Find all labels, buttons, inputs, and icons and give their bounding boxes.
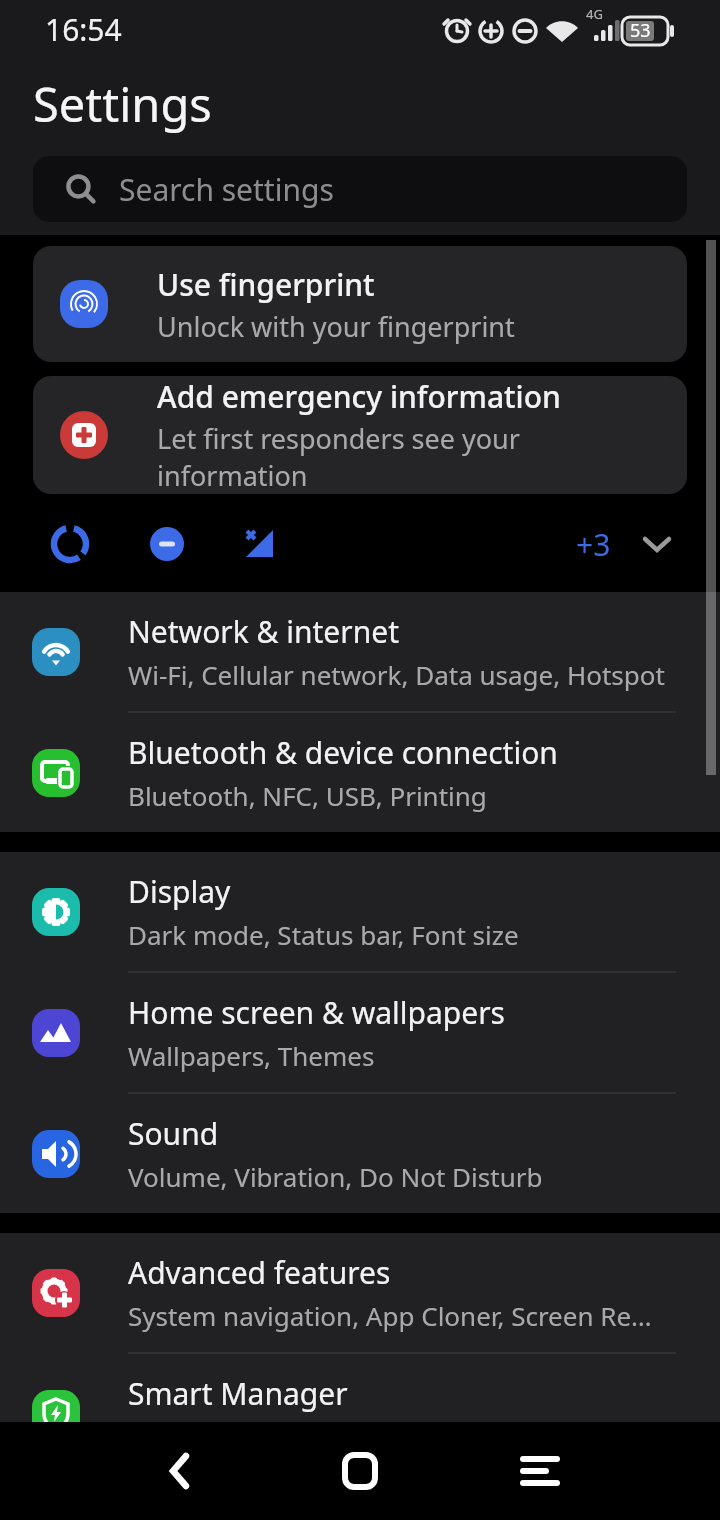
staticText: Smart Manager — [128, 1373, 348, 1414]
staticText: Bluetooth, NFC, USB, Printing — [128, 778, 487, 813]
staticText: Bluetooth & device connection — [128, 732, 558, 773]
staticText: Search settings — [119, 169, 334, 210]
staticText: Volume, Vibration, Do Not Disturb — [128, 1159, 543, 1194]
button[interactable] — [635, 522, 679, 566]
staticText: 4G — [586, 5, 603, 23]
staticText: Home screen & wallpapers — [128, 992, 505, 1033]
staticText: Dark mode, Status bar, Font size — [128, 917, 519, 952]
staticText: 53 — [630, 18, 651, 43]
staticText: Battery, Storage, Memory, Speed up — [128, 1419, 568, 1454]
button[interactable]: Home screen & wallpapers — [0, 973, 720, 1092]
button[interactable]: Sound — [0, 1094, 720, 1213]
staticText: Add emergency information — [157, 376, 561, 417]
staticText: Unlock with your fingerprint — [157, 308, 515, 345]
button[interactable]: Advanced features — [0, 1233, 720, 1352]
button[interactable] — [450, 1422, 630, 1520]
staticText: Network & internet — [128, 611, 399, 652]
staticText: Sound — [128, 1113, 219, 1154]
staticText: System navigation, App Cloner, Screen Re… — [128, 1298, 652, 1333]
button[interactable] — [239, 522, 283, 566]
staticText: Use fingerprint — [157, 264, 375, 305]
button[interactable]: Display — [0, 852, 720, 971]
button[interactable] — [270, 1422, 450, 1520]
staticText: information — [157, 457, 308, 494]
button[interactable]: Smart Manager — [0, 1354, 720, 1473]
button[interactable]: Bluetooth & device connection — [0, 713, 720, 832]
staticText: Advanced features — [128, 1252, 391, 1293]
button[interactable] — [145, 522, 189, 566]
staticText: Display — [128, 871, 231, 912]
staticText: Let first responders see your — [157, 420, 520, 457]
button[interactable]: Add emergency information — [33, 376, 687, 494]
button[interactable]: Search settings — [33, 156, 687, 222]
staticText: 16:54 — [45, 9, 122, 50]
button[interactable]: +3 — [576, 524, 611, 565]
staticText: Wallpapers, Themes — [128, 1038, 375, 1073]
staticText: Settings — [33, 72, 212, 136]
button[interactable] — [48, 522, 92, 566]
button[interactable]: Network & internet — [0, 592, 720, 711]
button[interactable] — [90, 1422, 270, 1520]
button[interactable]: Use fingerprint — [33, 246, 687, 362]
staticText: Wi-Fi, Cellular network, Data usage, Hot… — [128, 657, 665, 692]
